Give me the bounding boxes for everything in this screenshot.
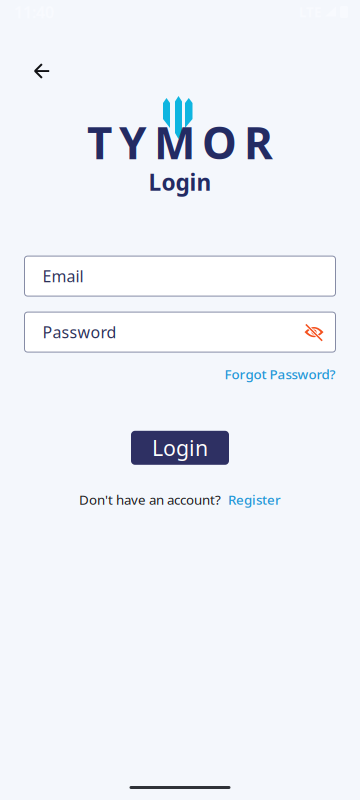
button[interactable]: Back <box>21 50 63 92</box>
staticText: Don't have an account? <box>79 491 221 508</box>
staticText: R <box>244 113 273 171</box>
staticText: Y <box>119 113 147 171</box>
staticText: O <box>202 113 237 171</box>
staticText: Email <box>42 265 83 287</box>
staticText: Register <box>228 491 281 508</box>
button[interactable]: Login <box>131 431 229 465</box>
staticText: Login <box>148 167 211 197</box>
staticText: Forgot Password? <box>224 365 335 383</box>
button[interactable]: Forgot Password? <box>224 365 335 383</box>
staticText: T <box>87 113 112 171</box>
staticText: Password <box>42 321 116 343</box>
staticText: Login <box>152 434 208 462</box>
staticText: M <box>154 113 195 171</box>
button[interactable]: Register <box>228 491 281 508</box>
